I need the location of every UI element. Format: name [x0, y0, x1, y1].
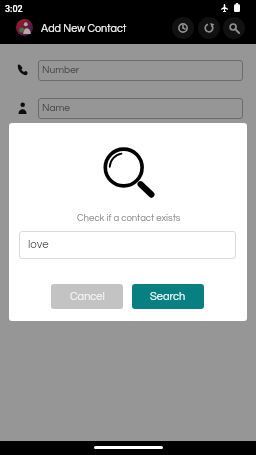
button[interactable]: Cancel: [51, 284, 123, 309]
button[interactable]: love: [19, 231, 236, 259]
button[interactable]: Search: [132, 284, 204, 309]
button[interactable]: Search: [223, 17, 245, 39]
staticText: 3:02: [5, 4, 23, 15]
staticText: Name: [42, 103, 71, 114]
staticText: Search: [150, 291, 186, 302]
button[interactable]: Refresh: [198, 17, 220, 39]
button[interactable]: Name: [38, 98, 243, 119]
staticText: Cancel: [70, 291, 105, 302]
button[interactable]: History: [172, 17, 194, 39]
staticText: Add New Contact: [41, 23, 127, 34]
staticText: love: [28, 239, 49, 251]
button[interactable]: Number: [38, 60, 243, 81]
staticText: Check if a contact exists: [77, 213, 181, 223]
staticText: Number: [42, 65, 80, 76]
